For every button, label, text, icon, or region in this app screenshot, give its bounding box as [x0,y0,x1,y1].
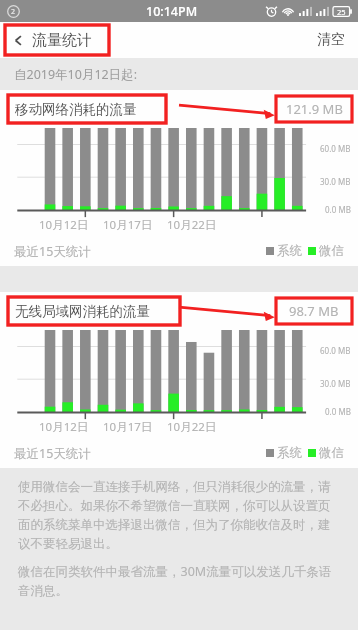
staticText: 最近15天统计 [14,243,91,260]
staticText: 无线局域网消耗的流量 [15,303,150,320]
other: Alarm [266,6,277,17]
staticText: 微信 [319,445,344,461]
staticText: 清空 [317,31,345,49]
staticText: 60.0 MB [320,345,351,356]
staticText: 30.0 MB [320,378,351,389]
staticText: 10月22日 [167,419,217,435]
staticText: 30.0 MB [320,176,351,187]
other: Back [13,35,24,46]
staticText: 移动网络消耗的流量 [15,101,137,118]
other: Battery 25% [333,6,352,17]
staticText: 10月12日 [39,419,89,435]
staticText: 自2019年10月12日起: [14,66,138,83]
other: Signal 2 [316,7,329,16]
staticText: 10月22日 [167,217,217,233]
staticText: 2 [11,7,16,17]
staticText: 最近15天统计 [14,445,91,462]
staticText: 系统 [277,243,302,259]
other: Signal 1 [299,7,312,16]
staticText: 流量统计 [32,31,92,50]
button[interactable]: 无线局域网消耗的流量 [0,292,358,330]
staticText: 121.9 MB [286,100,343,118]
staticText: 系统 [277,445,302,461]
staticText: 60.0 MB [320,143,351,154]
staticText: 10:14PM [146,3,198,20]
staticText: 使用微信会一直连接手机网络，但只消耗很少的流量，请不必担心。如果你不希望微信一直… [18,479,342,552]
staticText: 10月17日 [103,217,153,233]
staticText: 0.0 MB [325,204,351,215]
button[interactable]: 移动网络消耗的流量 [0,90,358,128]
staticText: 25 [337,7,346,17]
button[interactable]: 清空 [304,24,358,56]
staticText: 微信 [319,243,344,259]
staticText: 98.7 MB [289,302,339,320]
other: Wi-Fi [282,7,294,16]
button[interactable]: Back [5,25,109,55]
staticText: 10月12日 [39,217,89,233]
staticText: 10月17日 [103,419,153,435]
staticText: 微信在同类软件中最省流量，30M流量可以发送几千条语音消息。 [18,563,342,599]
staticText: 0.0 MB [325,406,351,417]
